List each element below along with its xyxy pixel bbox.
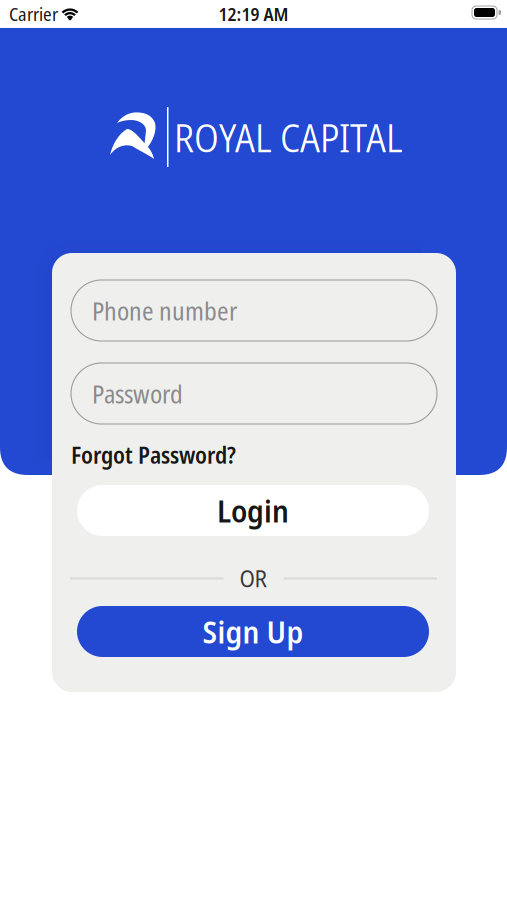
staticText: Sign Up bbox=[202, 611, 303, 652]
button[interactable]: Sign Up bbox=[77, 606, 429, 657]
staticText: Phone number bbox=[92, 293, 237, 328]
staticText: Login bbox=[217, 490, 289, 531]
staticText: Forgot Password? bbox=[71, 438, 236, 471]
staticText: 12:19 AM bbox=[218, 1, 288, 26]
staticText: Password bbox=[92, 376, 183, 411]
button[interactable]: Forgot Password? bbox=[71, 438, 236, 471]
button[interactable]: Login bbox=[77, 485, 429, 536]
staticText: Carrier bbox=[9, 1, 58, 26]
staticText: OR bbox=[239, 563, 267, 594]
staticText: ROYAL CAPITAL bbox=[174, 111, 403, 164]
